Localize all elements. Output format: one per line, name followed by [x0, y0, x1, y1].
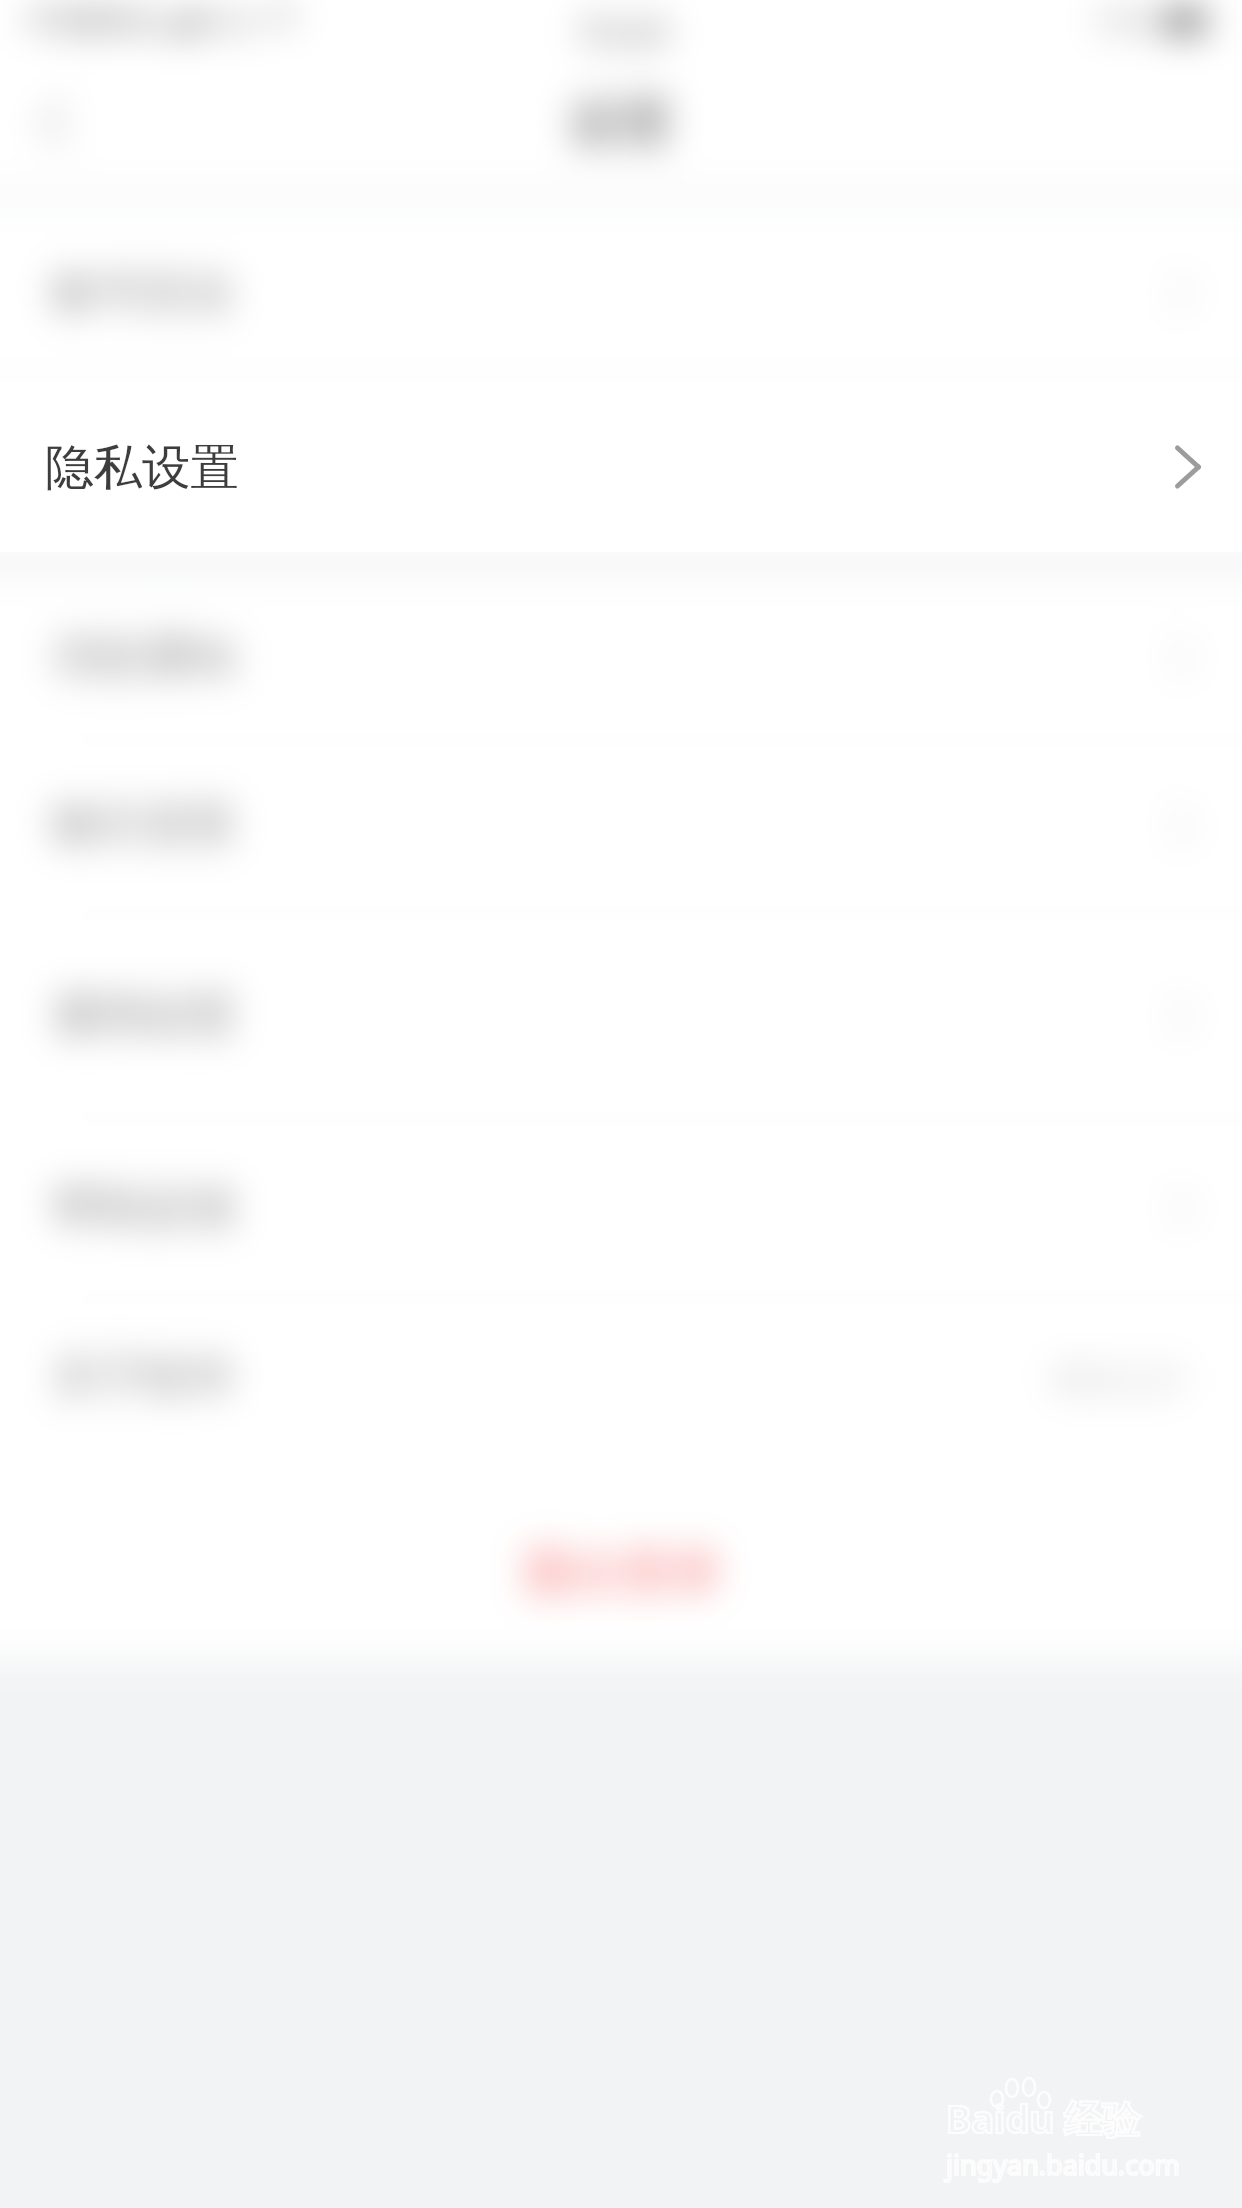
staticText: 消息通知	[52, 628, 236, 686]
button[interactable]: 账号安全	[0, 208, 1242, 378]
button[interactable]: 隐私设置	[0, 382, 1242, 552]
staticText: 聊天背景	[52, 797, 236, 855]
button[interactable]: 关于软件	[0, 1298, 1242, 1458]
button[interactable]: 退出登录	[0, 1500, 1242, 1660]
staticText: 关于软件	[52, 1349, 236, 1407]
staticText: 隐私设置	[45, 437, 239, 498]
staticText: Baidu 经验	[946, 2092, 1140, 2144]
staticText: 中国移动	[26, 0, 158, 42]
button[interactable]: 消息通知	[0, 576, 1242, 738]
staticText: 10:24	[575, 7, 668, 56]
staticText: 帮助反馈	[52, 1179, 236, 1237]
staticText: 76%	[1094, 1, 1154, 42]
staticText: 退出登录	[521, 1541, 721, 1604]
button[interactable]: 帮助反馈	[0, 1120, 1242, 1296]
button[interactable]: 聊天背景	[0, 740, 1242, 912]
button[interactable]: 通用设置	[0, 914, 1242, 1118]
staticText: jingyan.baidu.com	[946, 2146, 1180, 2183]
staticText: 设置	[569, 90, 673, 156]
other: Open privacy settings	[1162, 443, 1210, 491]
staticText: 账号安全	[52, 264, 236, 322]
staticText: 通用设置	[52, 987, 236, 1045]
